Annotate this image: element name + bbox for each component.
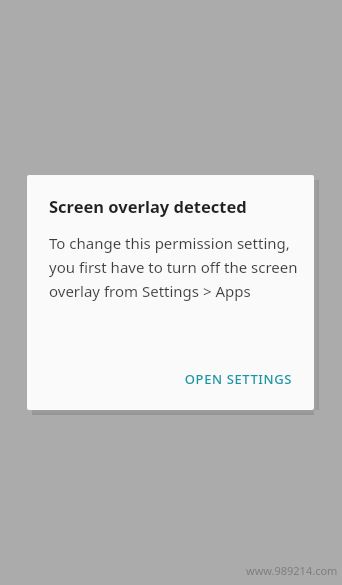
staticText: www.989214.com [246,563,338,578]
staticText: OPEN SETTINGS [184,370,292,388]
staticText: To change this permission setting, you f… [49,233,300,301]
button[interactable]: OPEN SETTINGS [176,362,300,396]
staticText: Screen overlay detected [49,195,247,217]
